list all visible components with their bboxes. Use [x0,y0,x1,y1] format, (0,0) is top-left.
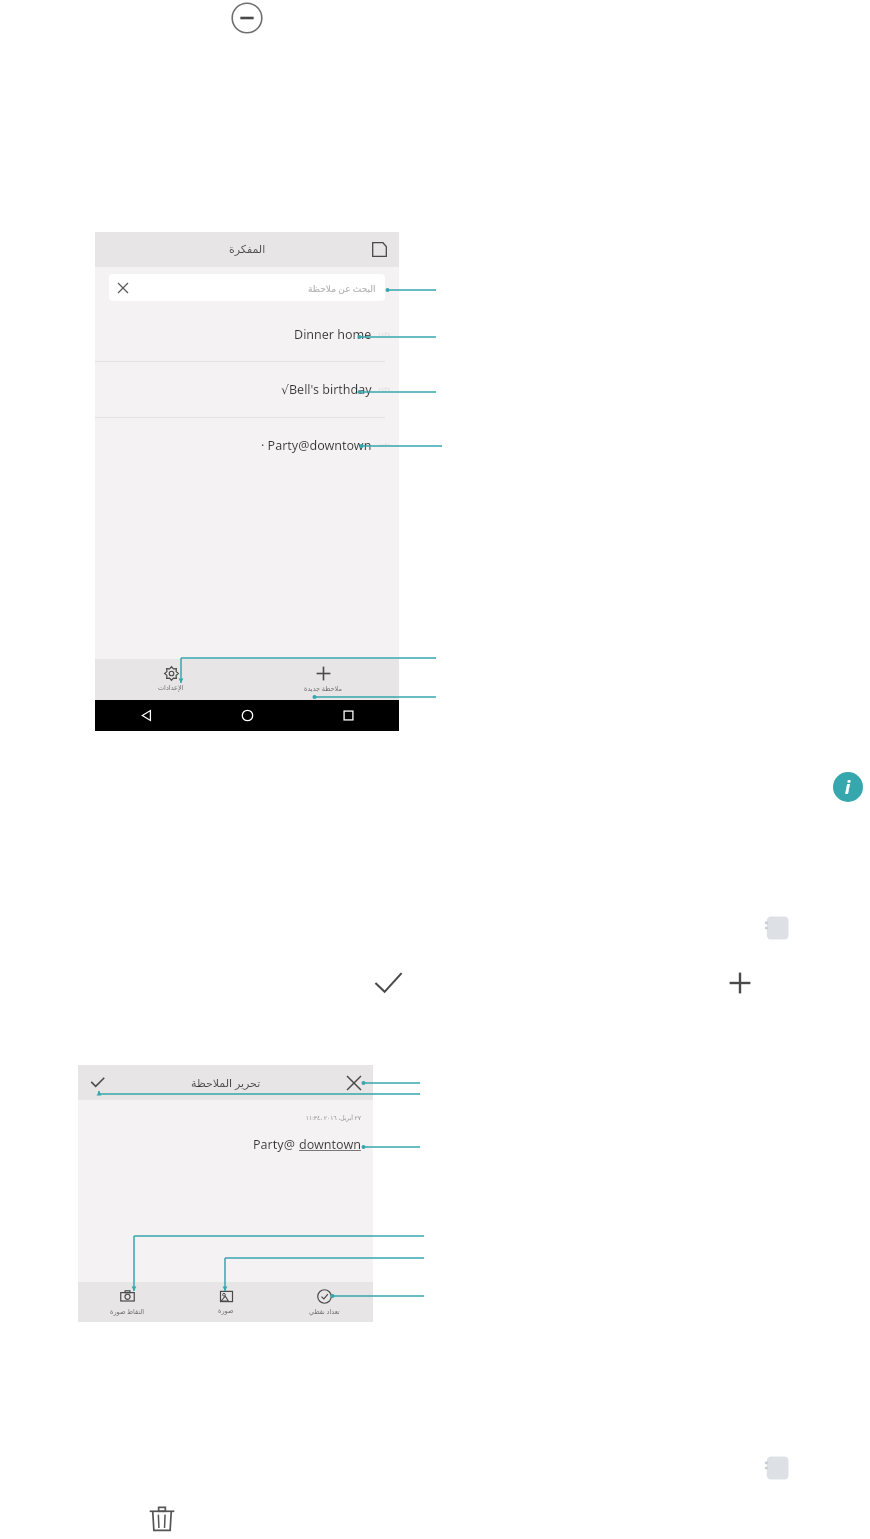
button[interactable]: Information [833,772,863,802]
button[interactable]: Recents [298,700,399,731]
button[interactable]: Collapse [231,2,263,34]
staticText: downtown [299,1136,361,1153]
staticText: البحث عن ملاحظة [308,282,376,294]
staticText: تحرير الملاحظة [191,1075,261,1090]
staticText: ١١:٢٤ [378,386,391,393]
button[interactable]: صورة [177,1282,275,1315]
button[interactable]: Back [95,700,197,731]
staticText: ١١:٢٤ [378,331,391,338]
staticText: Party@ [253,1136,299,1153]
button[interactable]: ملاحظة جديدة [247,659,399,693]
button[interactable]: Home [197,700,298,731]
staticText: ملاحظة جديدة [304,684,342,693]
button[interactable]: Save [90,1075,105,1090]
button[interactable]: New note page [371,241,388,258]
staticText: المفكرة [229,243,266,256]
button[interactable]: الإعدادات [95,659,247,692]
staticText: √Bell's birthday [281,381,372,398]
button[interactable]: البحث عن ملاحظة [109,274,385,301]
staticText: · Party@downtown [261,437,372,454]
button[interactable]: تعداد نقطي [275,1282,373,1316]
staticText: ١١:٢٤ [378,442,391,449]
button[interactable]: Dinner home [95,307,399,361]
staticText: Dinner home [294,326,372,343]
staticText: تعداد نقطي [309,1307,340,1316]
button[interactable]: √Bell's birthday [95,362,399,417]
staticText: الإعدادات [158,684,184,692]
button[interactable]: · Party@downtown [95,418,399,472]
button[interactable]: Delete [148,1504,176,1532]
button[interactable]: التقاط صورة [78,1282,177,1316]
staticText: صورة [218,1307,234,1315]
button[interactable]: Close [347,1076,361,1090]
staticText: التقاط صورة [110,1307,145,1316]
staticText: i [845,776,851,799]
staticText: ٢٧ أبريل، ٢٠١٦ ،١١:٣٤ [78,1114,361,1122]
